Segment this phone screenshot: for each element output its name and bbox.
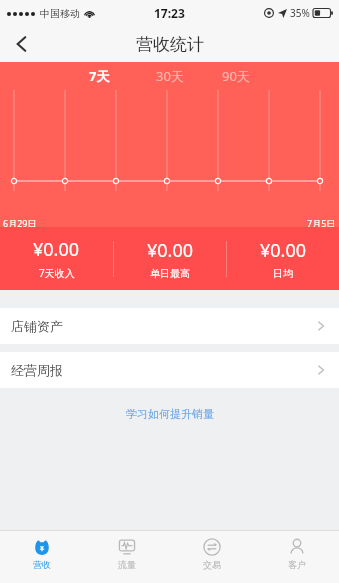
button[interactable]: ¥0.00 [114, 238, 226, 280]
button[interactable]: 学习如何提升销量 [0, 402, 339, 426]
button[interactable]: ¥0.00 [0, 237, 113, 280]
button[interactable]: 流量 [84, 531, 169, 583]
staticText: 客户 [288, 559, 306, 570]
button[interactable]: 店铺资产 [0, 308, 339, 344]
staticText: 经营周报 [11, 362, 63, 378]
staticText: 交易 [203, 559, 221, 570]
staticText: 17:23 [154, 5, 185, 21]
staticText: ¥0.00 [260, 238, 307, 263]
staticText: 7天 [89, 67, 110, 85]
staticText: 6月29日 [3, 217, 37, 227]
button[interactable]: 90天 [220, 65, 252, 87]
staticText: 营收 [33, 559, 51, 570]
staticText: 日均 [273, 267, 293, 280]
staticText: 单日最高 [150, 267, 190, 280]
staticText: 学习如何提升销量 [126, 407, 214, 421]
staticText: 流量 [118, 559, 136, 570]
button[interactable]: 7天 [87, 65, 112, 87]
button[interactable]: ¥0.00 [227, 238, 339, 280]
button[interactable]: Back [0, 26, 44, 62]
staticText: 35% [290, 6, 310, 20]
button[interactable]: 交易 [169, 531, 254, 583]
staticText: 7天收入 [39, 266, 75, 280]
staticText: 90天 [222, 67, 250, 85]
staticText: 营收统计 [136, 34, 204, 55]
staticText: 店铺资产 [11, 318, 63, 334]
button[interactable]: 营收 [0, 531, 84, 583]
staticText: 中国移动 [40, 7, 80, 20]
staticText: 30天 [156, 67, 184, 85]
staticText: ¥0.00 [147, 238, 194, 263]
staticText: 7月5日 [307, 217, 336, 227]
button[interactable]: 经营周报 [0, 352, 339, 388]
staticText: ¥0.00 [33, 237, 80, 262]
button[interactable]: 30天 [154, 65, 186, 87]
button[interactable]: 客户 [254, 531, 339, 583]
